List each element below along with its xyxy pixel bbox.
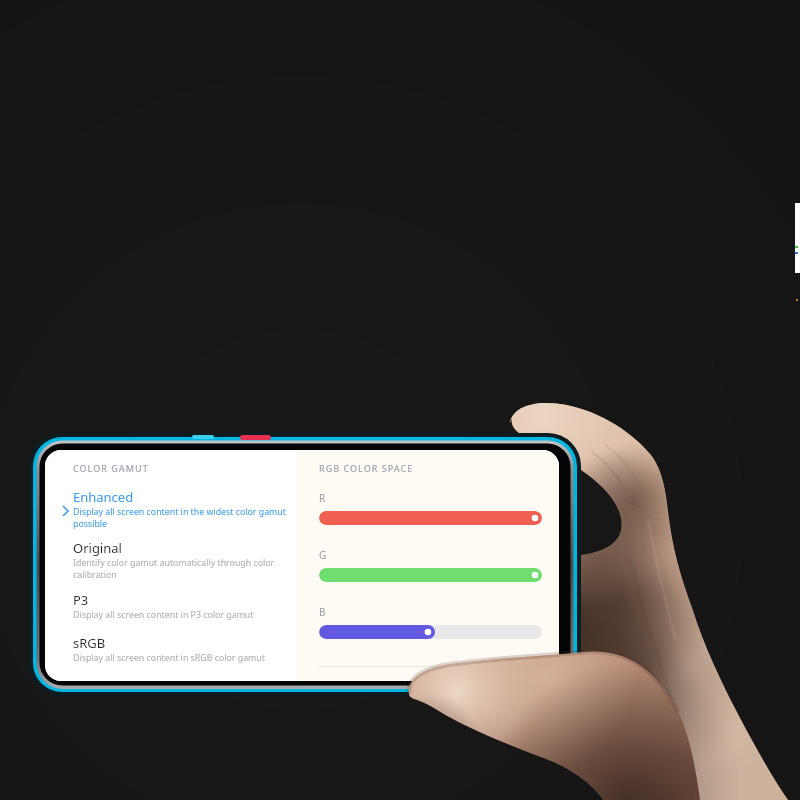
button[interactable]: Original (45, 539, 297, 591)
staticText: G (319, 548, 327, 562)
staticText: Original (73, 539, 122, 557)
staticText: P3 (73, 591, 89, 609)
staticText: Enhanced (73, 488, 134, 506)
staticText: RGB COLOR SPACE (319, 462, 414, 474)
staticText: sRGB (73, 634, 106, 652)
button[interactable]: sRGB (45, 634, 297, 674)
button[interactable]: G channel slider (319, 568, 542, 582)
button[interactable]: Enhanced (45, 488, 297, 539)
staticText: COLOR GAMUT (73, 462, 149, 474)
button[interactable]: R channel slider (319, 511, 542, 525)
button[interactable]: B channel slider (319, 625, 542, 639)
staticText: Display all screen content in sRGB color… (73, 652, 265, 664)
staticText: R (319, 491, 326, 505)
staticText: Display all screen content in P3 color g… (73, 609, 254, 621)
button[interactable]: P3 (45, 591, 297, 634)
staticText: Display all screen content in the widest… (73, 506, 291, 529)
staticText: B (319, 605, 326, 619)
staticText: Identify color gamut automatically throu… (73, 557, 291, 580)
